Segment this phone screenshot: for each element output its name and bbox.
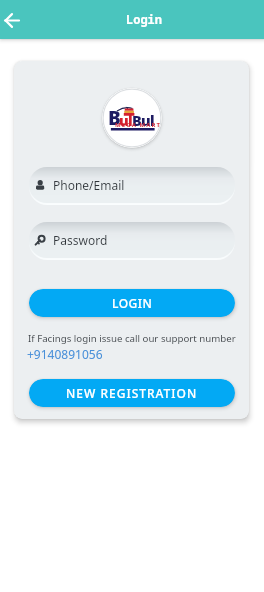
staticText: Login [126, 11, 163, 27]
staticText: If Facings login issue call our support … [28, 332, 236, 345]
staticText: B [108, 105, 120, 130]
staticText: LOGIN [112, 295, 153, 311]
staticText: NEW REGISTRATION [66, 385, 198, 401]
button[interactable]: Password [29, 222, 235, 258]
staticText: Password [53, 232, 108, 248]
button[interactable]: Back [0, 8, 24, 32]
staticText: ul [119, 110, 132, 130]
button[interactable]: LOGIN [29, 289, 235, 317]
button[interactable]: +9140891056 [27, 346, 103, 362]
button[interactable]: Phone/Email [29, 167, 235, 203]
staticText: Phone/Email [53, 177, 125, 193]
button[interactable]: NEW REGISTRATION [29, 379, 235, 407]
staticText: MEGA MART [115, 121, 162, 129]
staticText: Bul [132, 110, 154, 130]
